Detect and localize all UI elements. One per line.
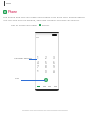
staticText: 0 — [45, 70, 47, 74]
button[interactable] — [47, 85, 52, 87]
button[interactable]: # — [52, 70, 56, 74]
button[interactable]: 7 — [36, 65, 40, 69]
staticText: 5 — [45, 61, 47, 65]
button[interactable]: 1 — [36, 56, 40, 60]
staticText: 1 — [37, 56, 39, 60]
staticText: 4 — [37, 61, 39, 65]
button[interactable]: 9 — [52, 65, 56, 69]
button[interactable]: 0 — [44, 70, 48, 74]
staticText: 6 — [53, 61, 55, 65]
staticText: 2 — [45, 56, 47, 60]
button[interactable]: Home — [3, 1, 17, 7]
staticText: 8 — [45, 65, 47, 69]
staticText: 9 — [53, 65, 55, 69]
button[interactable] — [42, 85, 47, 87]
staticText: Call — [15, 76, 20, 79]
staticText: Phone — [8, 10, 18, 14]
staticText: Phone. — [41, 23, 50, 26]
button[interactable] — [36, 85, 41, 87]
button[interactable]: 2 — [44, 56, 48, 60]
staticText: 7 — [37, 65, 39, 69]
button[interactable]: * — [36, 70, 40, 74]
button[interactable]: Call — [44, 78, 48, 82]
staticText: * — [37, 70, 39, 74]
button[interactable]: 5 — [44, 61, 48, 65]
button[interactable] — [53, 85, 58, 87]
staticText: The Phone app lets you make and receive … — [3, 15, 87, 21]
button[interactable]: 4 — [36, 61, 40, 65]
staticText: # — [53, 70, 55, 74]
button[interactable]: 3 — [52, 56, 56, 60]
button[interactable]: 6 — [52, 61, 56, 65]
button[interactable]: 8 — [44, 65, 48, 69]
staticText: Images are simulated for illustration pu… — [0, 109, 90, 112]
staticText: Tap to locate and open — [11, 23, 38, 26]
staticText: 3 — [53, 56, 55, 60]
button[interactable]: Phone — [3, 10, 18, 14]
staticText: Number keypad — [14, 56, 32, 59]
